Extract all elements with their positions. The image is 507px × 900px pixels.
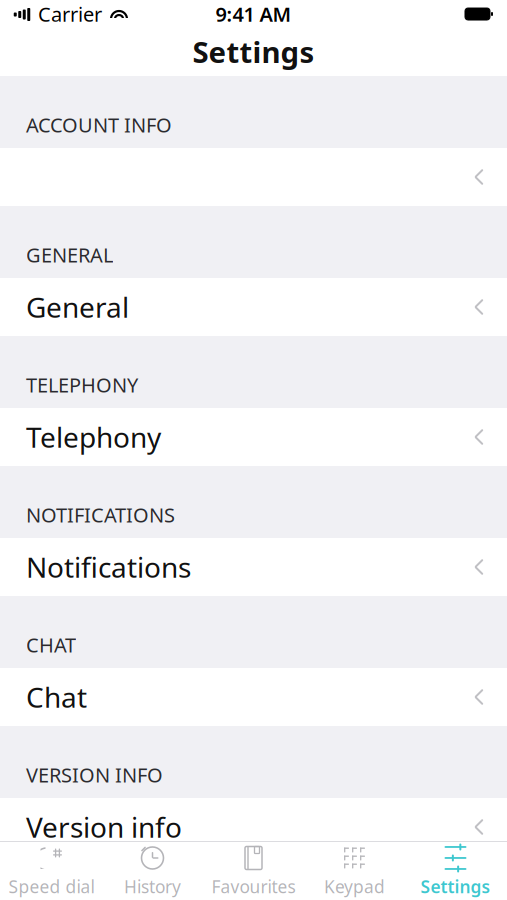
button[interactable]: Telephony <box>0 408 507 466</box>
staticText: Notifications <box>26 548 191 586</box>
staticText: NOTIFICATIONS <box>26 501 175 528</box>
staticText: Speed dial <box>8 875 94 898</box>
staticText: 9:41 AM <box>215 1 291 27</box>
staticText: GENERAL <box>26 241 113 268</box>
button[interactable]: Speed dial <box>1 842 102 900</box>
staticText: Settings <box>192 32 314 71</box>
staticText: Keypad <box>324 875 385 898</box>
staticText: ACCOUNT INFO <box>26 111 172 138</box>
button[interactable]: Favourites <box>203 842 304 900</box>
staticText: Version info <box>26 808 182 846</box>
staticText: Chat <box>26 678 87 716</box>
staticText: Favourites <box>211 875 295 898</box>
button[interactable]: Notifications <box>0 538 507 596</box>
button[interactable]: General <box>0 278 507 336</box>
staticText: VERSION INFO <box>26 761 163 788</box>
staticText: Settings <box>420 875 490 898</box>
staticText: CHAT <box>26 631 76 658</box>
button[interactable]: Chat <box>0 668 507 726</box>
staticText: General <box>26 288 129 326</box>
button[interactable]: History <box>102 842 203 900</box>
staticText: History <box>124 875 181 898</box>
button[interactable]: Keypad <box>304 842 405 900</box>
staticText: TELEPHONY <box>26 371 138 398</box>
staticText: Carrier <box>38 1 102 27</box>
staticText: Telephony <box>26 418 161 456</box>
button[interactable]: Version info <box>0 798 507 856</box>
button[interactable]: Settings <box>405 842 506 900</box>
